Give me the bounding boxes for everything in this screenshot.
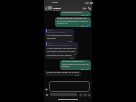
staticText: Vous [48, 42, 53, 44]
staticText: je peux t'envoyer une photo de mes carte… [57, 17, 89, 25]
button[interactable]: Envoie moi des photos de ta carte [45, 71, 81, 76]
staticText: 09:34 [70, 57, 75, 59]
staticText: en ligne [53, 9, 60, 11]
staticText: 09:32 [81, 25, 86, 27]
staticText: 09:33 [72, 53, 77, 55]
button[interactable]: Sticker [83, 93, 87, 97]
staticText: 09:36 [52, 1, 58, 4]
button[interactable] [49, 81, 90, 92]
button[interactable] [50, 93, 77, 96]
staticText: Envoie moi des photos de ta carte [47, 71, 79, 74]
staticText: Comment puis-je t'affilier? [47, 54, 72, 57]
staticText: 09:35 [81, 68, 86, 70]
button[interactable]: je peux t'envoyer une photo de mes carte… [55, 17, 91, 27]
staticText: Vous [48, 29, 53, 31]
button[interactable]: Add attachment [44, 87, 49, 92]
button[interactable]: More [87, 93, 91, 97]
button[interactable]: Keyboard [46, 94, 48, 96]
button[interactable]: Vous [45, 42, 78, 55]
button[interactable]: Comment puis-je t'affilier? [45, 54, 76, 59]
button[interactable]: Back [44, 6, 48, 10]
staticText: C'est le texte du Peuple de vacances [47, 34, 72, 40]
button[interactable]: Video call [82, 6, 87, 11]
button[interactable]: Call [87, 6, 92, 11]
button[interactable]: Vous [45, 29, 74, 42]
button[interactable]: Emoji [79, 93, 83, 97]
staticText: 09:32 [81, 14, 86, 16]
staticText: 09:36 [75, 74, 80, 76]
staticText: si alors l'envoyer une photo de tes cart… [47, 47, 76, 53]
staticText: Mathis [53, 6, 61, 9]
staticText: je peux t'envoyer une photo [48, 44, 72, 46]
staticText: pourquoi en anglais ? [48, 31, 67, 33]
button[interactable]: pourquoi en anglais ? [60, 11, 91, 16]
staticText: tu fais les paiements en ligne validé su… [62, 60, 89, 68]
staticText: 09:33 [68, 40, 73, 42]
button[interactable]: tu fais les paiements en ligne validé su… [60, 60, 91, 70]
staticText: pourquoi en anglais ? [62, 11, 83, 14]
